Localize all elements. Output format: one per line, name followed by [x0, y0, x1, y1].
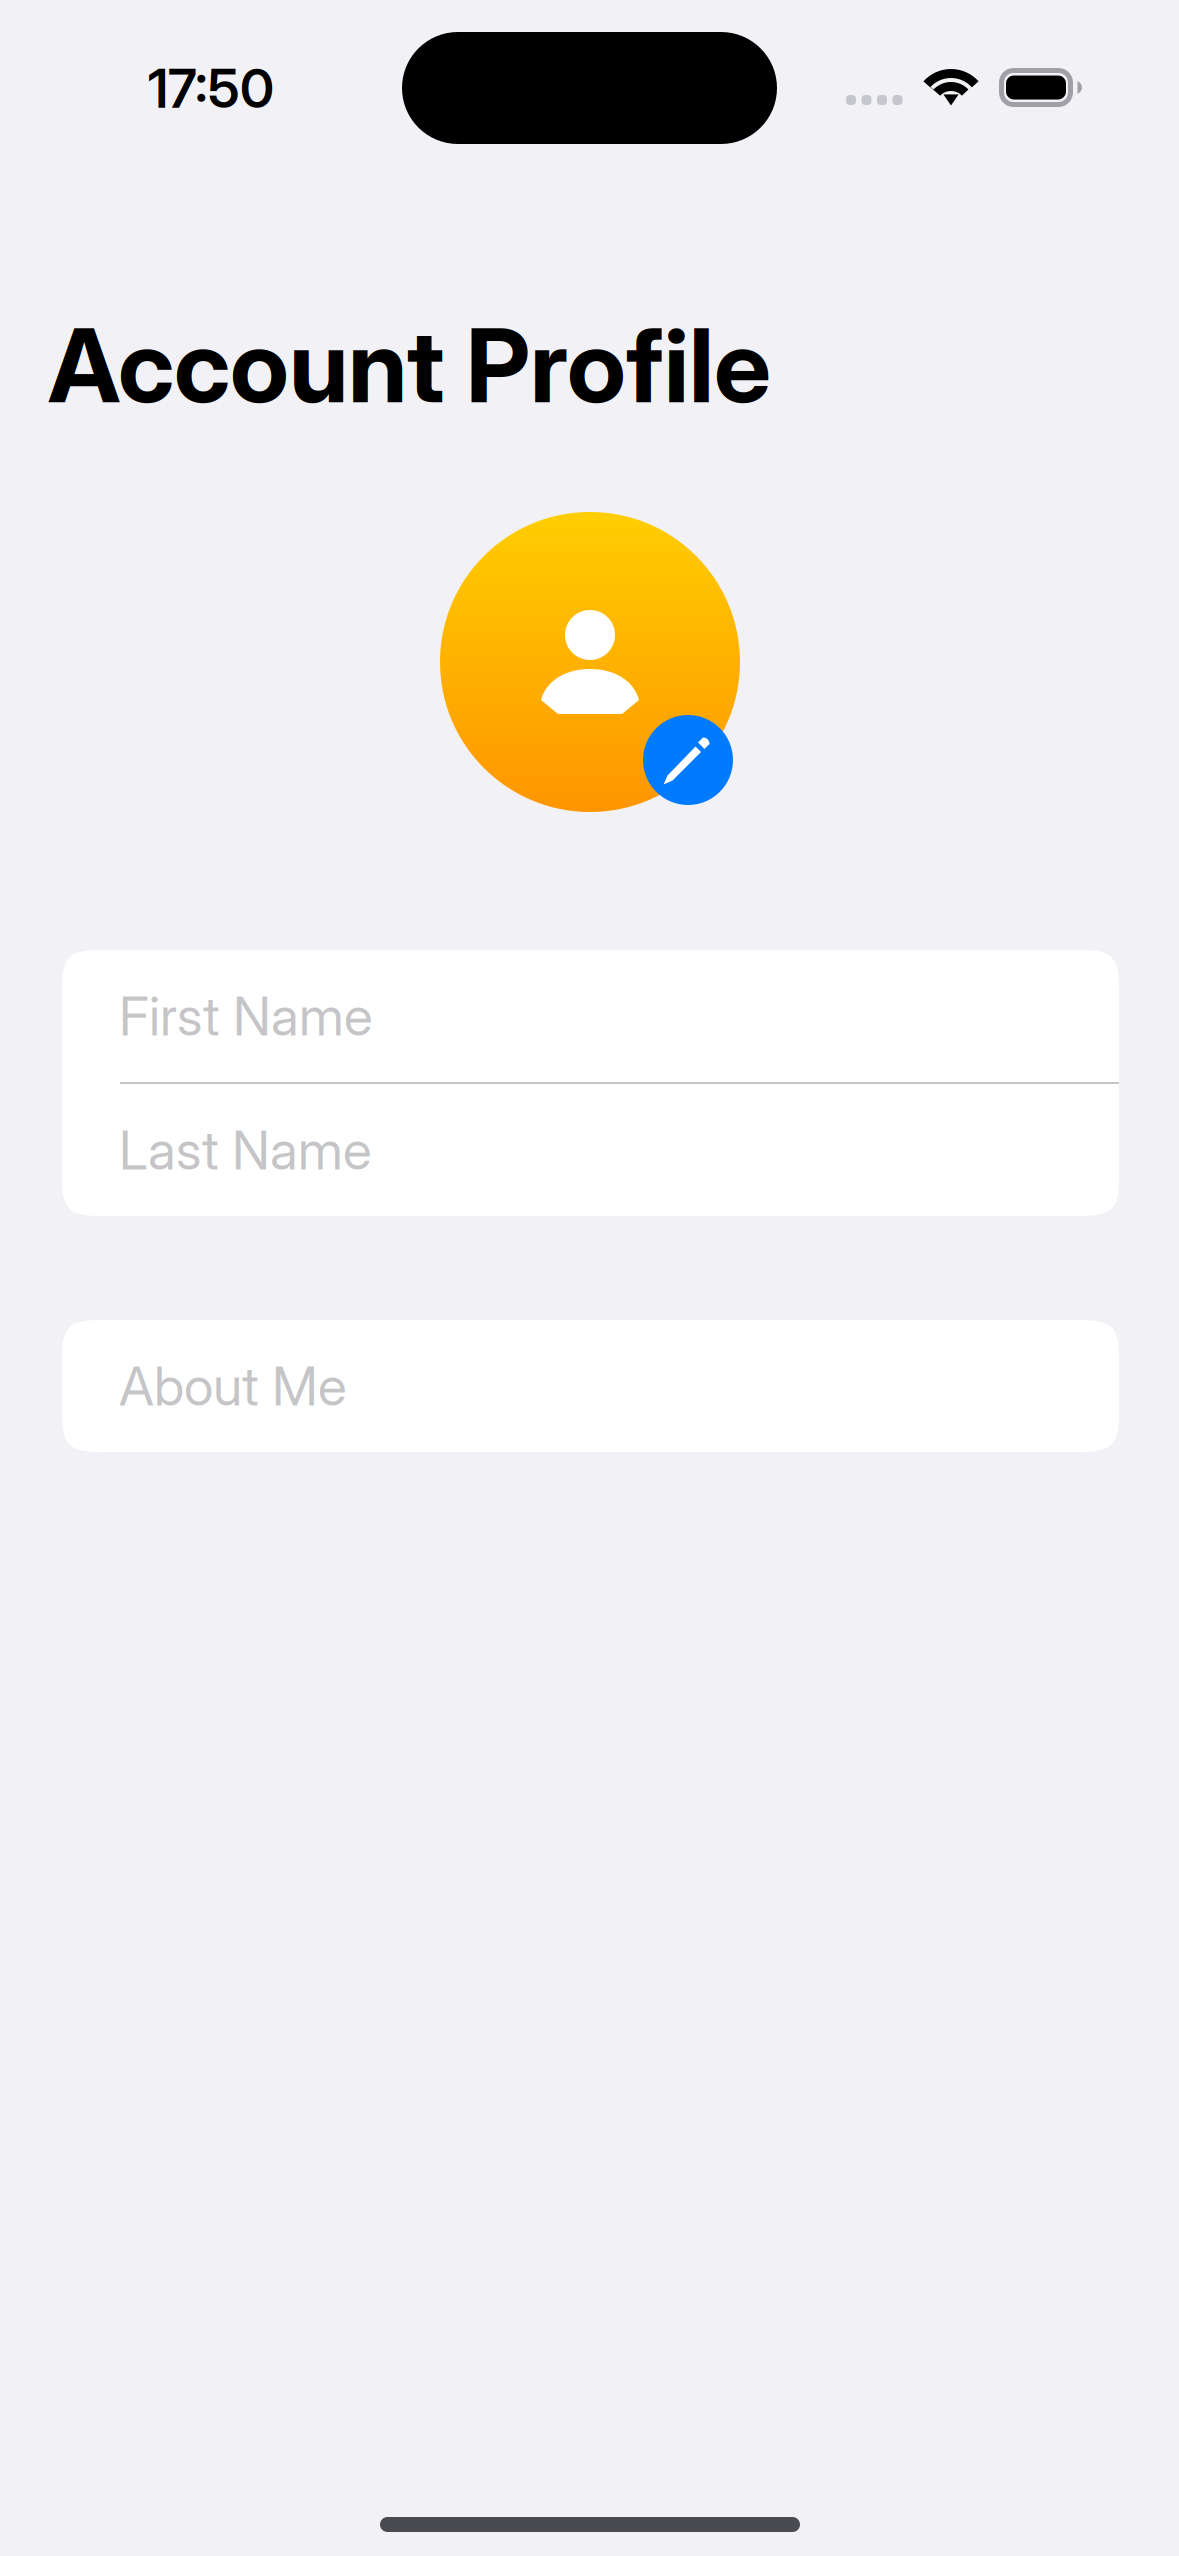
button[interactable]: About Me: [62, 1320, 1119, 1452]
button[interactable]: Edit profile photo: [643, 715, 733, 805]
button[interactable]: First Name: [62, 950, 1119, 1082]
staticText: First Name: [119, 984, 373, 1048]
button[interactable]: Last Name: [62, 1084, 1119, 1216]
staticText: About Me: [119, 1354, 347, 1418]
staticText: 17:50: [148, 56, 274, 120]
staticText: Account Profile: [48, 304, 771, 427]
staticText: Last Name: [119, 1118, 372, 1182]
